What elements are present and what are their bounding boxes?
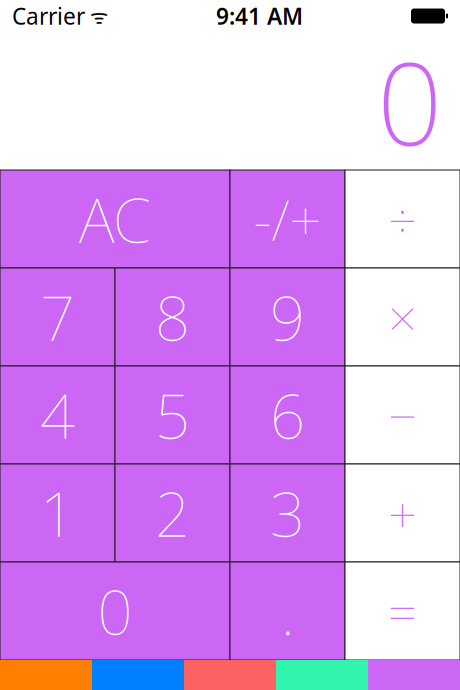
staticText: × xyxy=(388,283,417,351)
staticText: 2 xyxy=(155,472,190,554)
button[interactable]: 5 xyxy=(115,366,230,464)
button[interactable]: . xyxy=(230,562,345,660)
button[interactable]: 4 xyxy=(0,366,115,464)
button[interactable]: 1 xyxy=(0,464,115,562)
button[interactable]: ÷ xyxy=(345,170,460,268)
button[interactable]: − xyxy=(345,366,460,464)
staticText: 4 xyxy=(40,374,75,456)
staticText: − xyxy=(388,381,417,449)
staticText: 5 xyxy=(155,374,190,456)
button[interactable]: 0 xyxy=(0,562,230,660)
staticText: . xyxy=(281,570,294,652)
staticText: AC xyxy=(79,178,151,260)
button[interactable]: 9 xyxy=(230,268,345,366)
button[interactable]: 6 xyxy=(230,366,345,464)
staticText: 9:41 AM xyxy=(216,1,303,31)
staticText: ÷ xyxy=(388,185,417,253)
button[interactable]: 7 xyxy=(0,268,115,366)
staticText: + xyxy=(388,479,417,547)
staticText: 0 xyxy=(97,570,132,652)
button[interactable]: + xyxy=(345,464,460,562)
staticText: 3 xyxy=(270,472,305,554)
staticText: -/+ xyxy=(253,182,321,256)
staticText: = xyxy=(388,577,417,645)
button[interactable]: -/+ xyxy=(230,170,345,268)
button[interactable]: = xyxy=(345,562,460,660)
button[interactable]: × xyxy=(345,268,460,366)
button[interactable]: 2 xyxy=(115,464,230,562)
button[interactable]: 3 xyxy=(230,464,345,562)
staticText: 1 xyxy=(40,472,75,554)
button[interactable]: 8 xyxy=(115,268,230,366)
button[interactable]: AC xyxy=(0,170,230,268)
staticText: 6 xyxy=(270,374,305,456)
staticText: 8 xyxy=(155,276,190,358)
staticText: 7 xyxy=(40,276,75,358)
staticText: Carrier xyxy=(12,1,85,31)
staticText: ᯤ xyxy=(85,3,108,29)
staticText: 9 xyxy=(270,276,305,358)
staticText: 0 xyxy=(377,25,442,177)
